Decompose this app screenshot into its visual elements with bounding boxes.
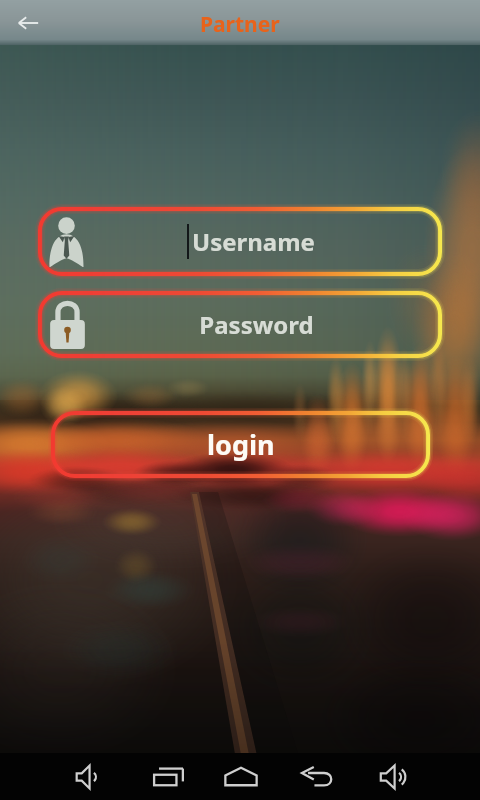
staticText: login	[207, 426, 275, 463]
staticText: Username	[192, 225, 315, 258]
staticText: Password	[199, 308, 314, 341]
button[interactable]: Username	[38, 207, 442, 276]
button[interactable]: login	[51, 411, 430, 478]
button[interactable]: Back	[287, 753, 347, 800]
button[interactable]: Home	[211, 753, 271, 800]
button[interactable]: Password	[38, 291, 442, 358]
button[interactable]: Back	[4, 2, 52, 44]
button[interactable]: Recents	[138, 753, 198, 800]
button[interactable]: Volume down	[59, 753, 119, 800]
button[interactable]: Volume up	[364, 753, 424, 800]
staticText: Partner	[200, 10, 280, 39]
